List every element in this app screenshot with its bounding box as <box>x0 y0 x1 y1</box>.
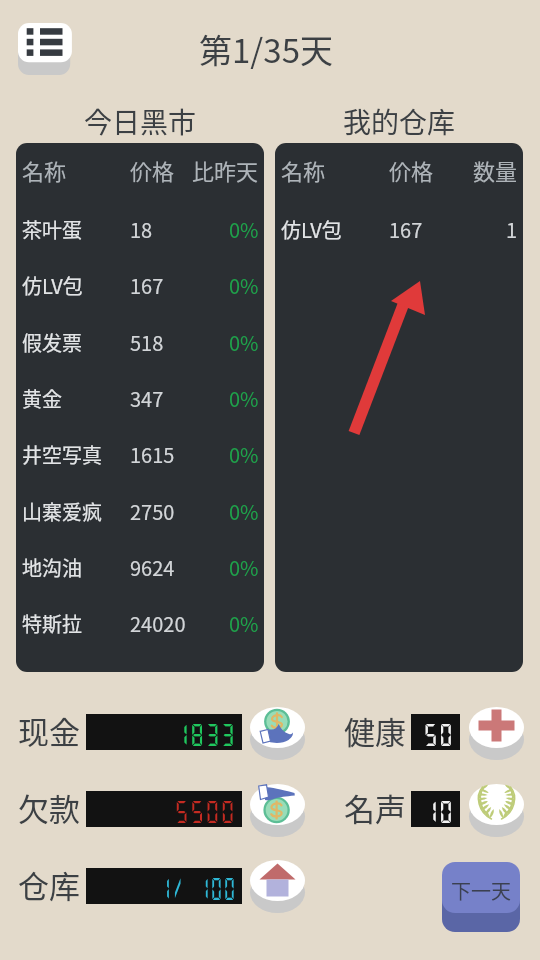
button[interactable]: 下一天 <box>442 862 520 932</box>
button[interactable]: 仿LV包 <box>16 257 264 313</box>
button[interactable]: 假发票 <box>16 314 264 370</box>
button[interactable]: 50 <box>411 714 460 750</box>
staticText: 10 <box>423 798 454 825</box>
staticText: 欠款 <box>18 785 80 830</box>
staticText: 1833 <box>174 721 236 748</box>
staticText: 第1/35天 <box>0 25 532 73</box>
button[interactable]: 5500 <box>86 791 242 827</box>
staticText: 0% <box>229 440 259 469</box>
staticText: 山寨爱疯 <box>22 497 102 526</box>
staticText: 18 <box>130 215 153 244</box>
staticText: 井空写真 <box>22 440 102 469</box>
button[interactable]: Warehouse <box>250 860 305 913</box>
staticText: 5500 <box>174 798 236 825</box>
staticText: 518 <box>130 328 164 357</box>
staticText: 特斯拉 <box>22 609 82 638</box>
staticText: 数量 <box>473 154 518 186</box>
staticText: 0% <box>229 215 259 244</box>
button[interactable]: 1833 <box>86 714 242 750</box>
staticText: 地沟油 <box>22 553 82 582</box>
staticText: 名声 <box>344 785 406 830</box>
staticText: 现金 <box>18 708 80 753</box>
staticText: 50 <box>423 721 454 748</box>
staticText: 黄金 <box>22 384 62 413</box>
button[interactable]: 仿LV包 <box>275 201 523 257</box>
staticText: 9624 <box>130 553 175 582</box>
button[interactable]: 名称 <box>16 143 264 198</box>
button[interactable]: Debt <box>250 784 305 837</box>
button[interactable]: Menu <box>18 23 72 75</box>
staticText: 价格 <box>389 154 434 186</box>
staticText: 仓库 <box>18 862 80 907</box>
staticText: 下一天 <box>451 876 511 905</box>
staticText: 2750 <box>130 497 175 526</box>
staticText: 仿LV包 <box>22 271 83 300</box>
staticText: 0% <box>229 497 259 526</box>
staticText: 仿LV包 <box>281 215 342 244</box>
staticText: 167 <box>130 271 164 300</box>
staticText: 价格 <box>130 154 175 186</box>
staticText: 347 <box>130 384 164 413</box>
button[interactable]: 茶叶蛋 <box>16 201 264 257</box>
button[interactable]: Health <box>469 707 524 760</box>
button[interactable]: 山寨爱疯 <box>16 483 264 539</box>
staticText: 167 <box>389 215 423 244</box>
button[interactable]: 特斯拉 <box>16 595 264 651</box>
staticText: 0% <box>229 271 259 300</box>
staticText: 茶叶蛋 <box>22 215 82 244</box>
staticText: 0% <box>229 609 259 638</box>
staticText: 健康 <box>344 708 406 753</box>
staticText: 我的仓库 <box>275 101 523 142</box>
button[interactable]: 井空写真 <box>16 426 264 482</box>
button[interactable]: 地沟油 <box>16 539 264 595</box>
staticText: 0% <box>229 553 259 582</box>
button[interactable]: 黄金 <box>16 370 264 426</box>
button[interactable]: 1/ 100 <box>86 868 242 904</box>
staticText: 名称 <box>22 154 67 186</box>
staticText: 24020 <box>130 609 186 638</box>
staticText: 名称 <box>281 154 326 186</box>
button[interactable]: Cash <box>250 707 305 760</box>
staticText: 1/ 100 <box>158 875 236 902</box>
button[interactable]: 10 <box>411 791 460 827</box>
button[interactable]: 名称 <box>275 143 523 198</box>
staticText: 0% <box>229 384 259 413</box>
staticText: 0% <box>229 328 259 357</box>
staticText: 今日黑市 <box>16 101 264 142</box>
staticText: 比昨天 <box>192 154 259 186</box>
staticText: 1 <box>506 215 518 244</box>
staticText: 假发票 <box>22 328 82 357</box>
button[interactable]: Reputation <box>469 784 524 837</box>
staticText: 1615 <box>130 440 175 469</box>
